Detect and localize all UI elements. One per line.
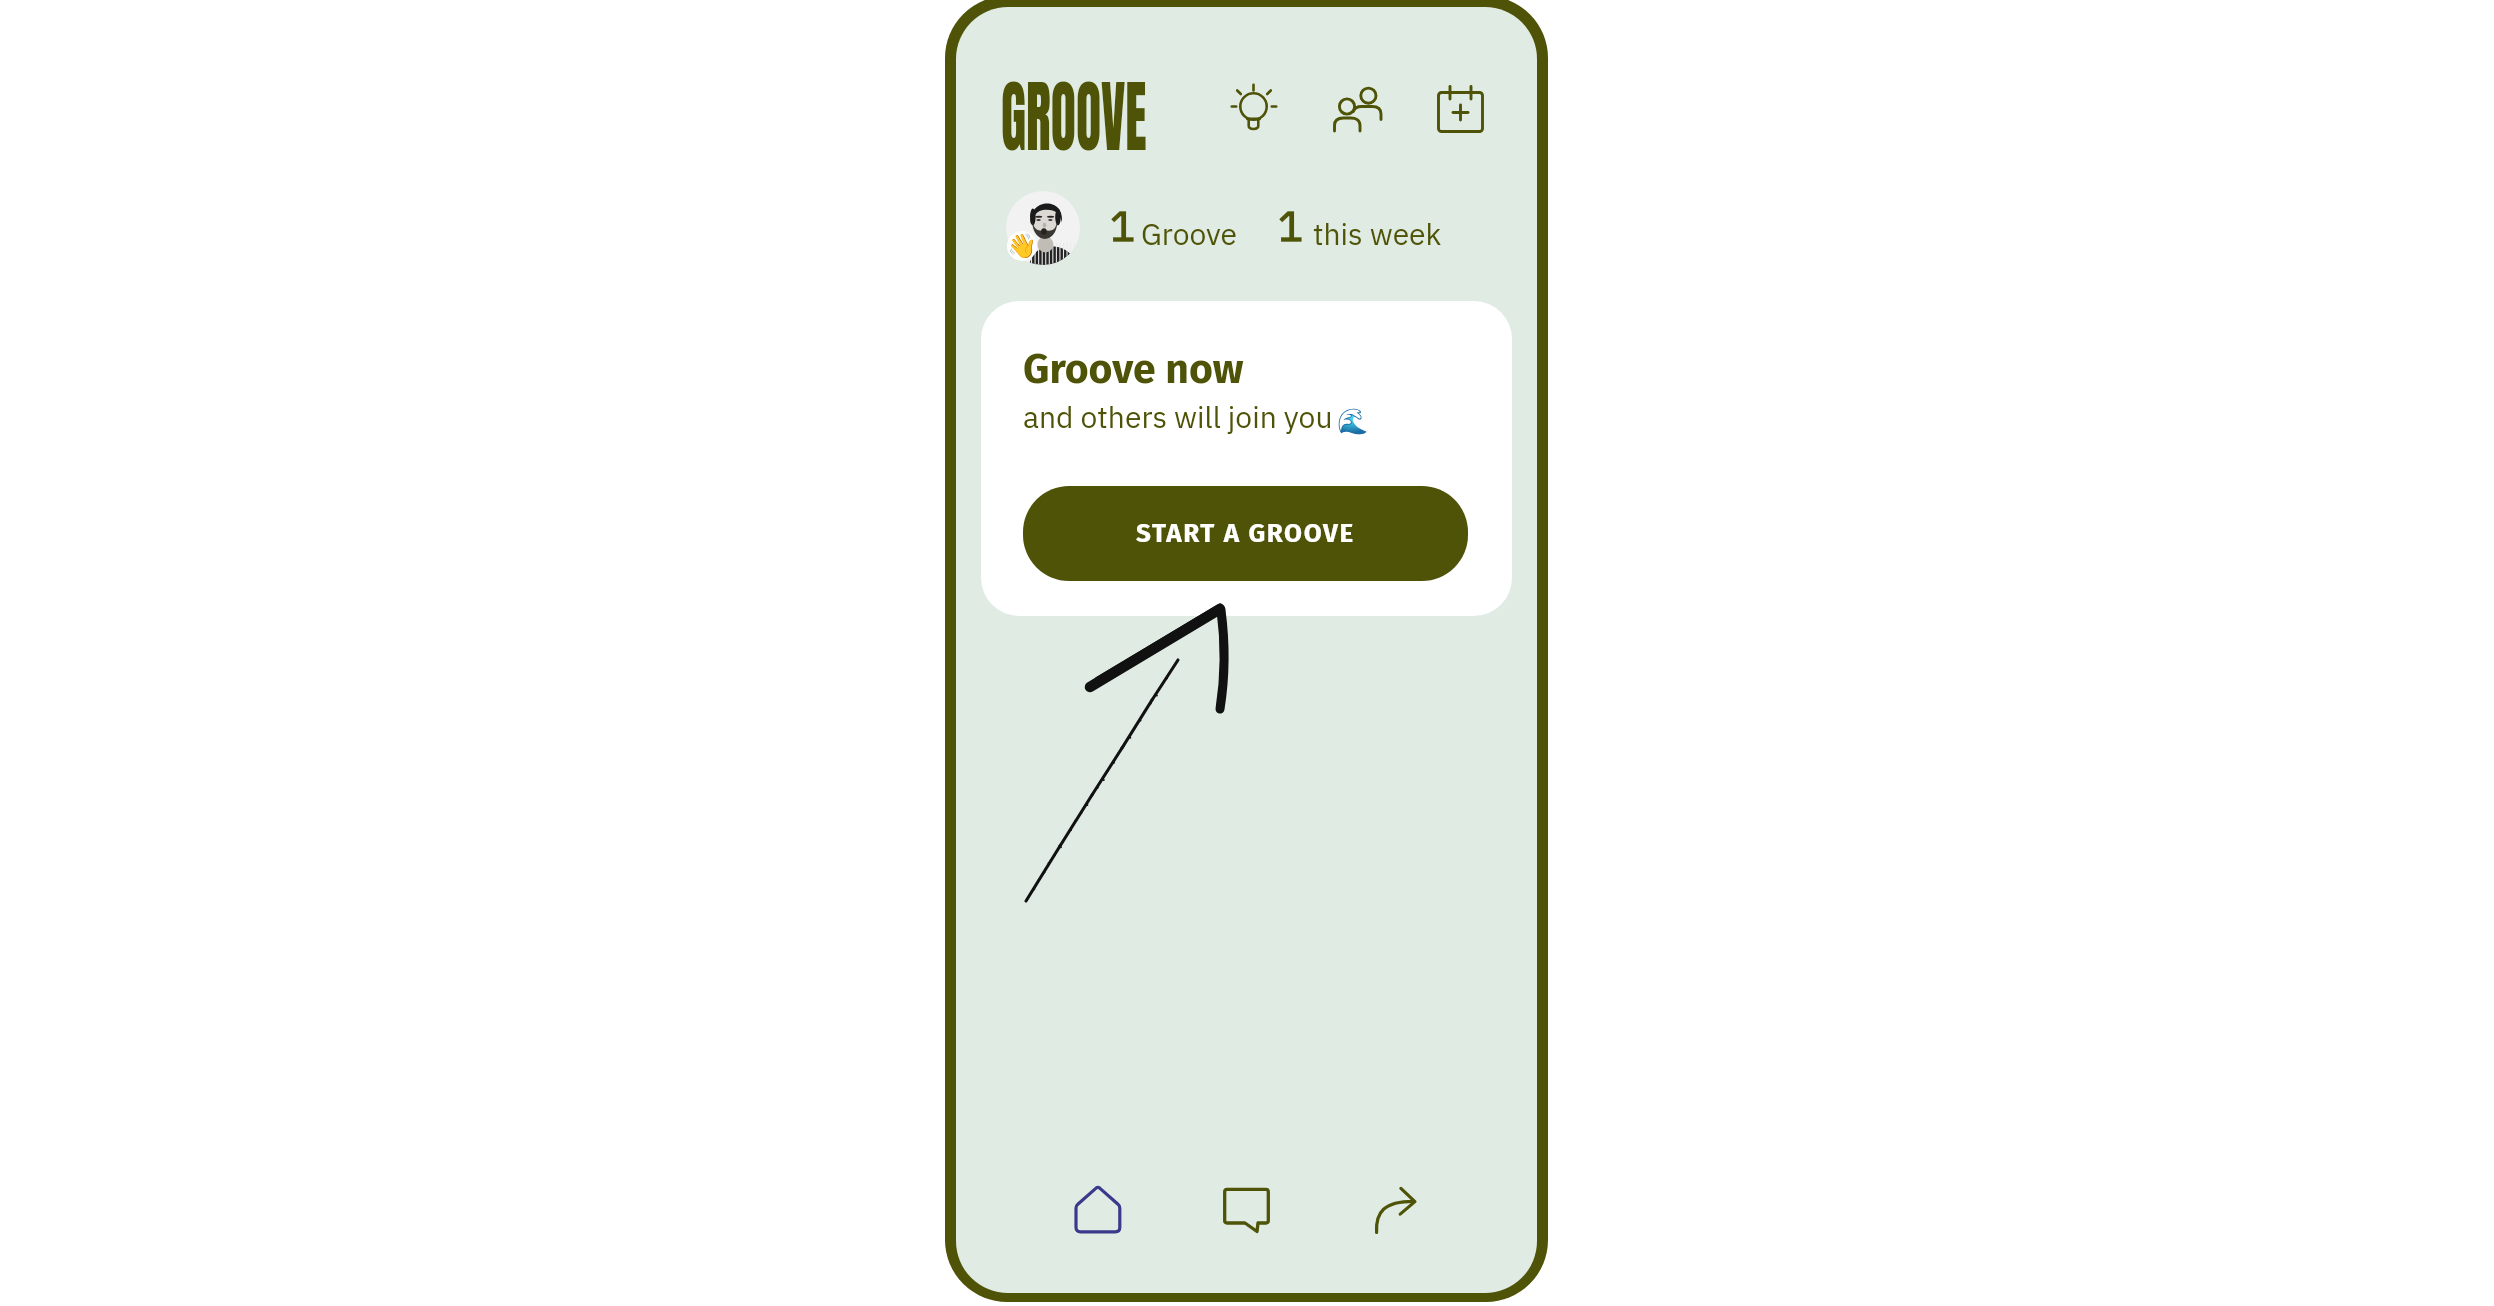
staticText: 👋 [1007,232,1037,260]
button[interactable]: Schedule a groove [1423,71,1498,147]
staticText: Groove now [1023,345,1244,394]
staticText: this week [1313,214,1442,253]
staticText: START A GROOVE [1136,518,1355,549]
button[interactable]: Groove [1001,57,1261,187]
button[interactable]: Share [1360,1172,1431,1248]
staticText: 1 [1278,198,1304,253]
button[interactable]: Profile [1006,191,1080,265]
button[interactable]: START A GROOVE [1023,486,1468,581]
button[interactable]: Messages [1209,1173,1284,1248]
staticText: and others will join you [1023,397,1333,436]
staticText: 🌊 [1337,407,1369,436]
button[interactable]: Home [1060,1171,1136,1248]
button[interactable]: Ideas [1217,70,1291,146]
staticText: Groove [1141,214,1238,253]
staticText: GROOVE [1001,57,1147,176]
staticText: 1 [1110,198,1136,253]
button[interactable]: Friends [1319,72,1396,146]
